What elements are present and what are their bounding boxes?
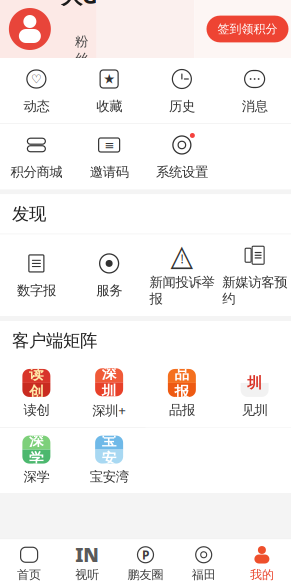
staticText: 深圳+ <box>92 401 126 419</box>
button[interactable]: 品报 <box>145 361 218 426</box>
staticText: 粉丝 0 <box>75 33 88 85</box>
button[interactable]: IN <box>58 545 116 582</box>
button[interactable]: 我的 <box>233 545 291 582</box>
staticText: 深圳 <box>102 364 117 400</box>
staticText: 深学 <box>29 432 44 468</box>
button[interactable]: 历史 <box>145 58 218 123</box>
button[interactable]: 圳 <box>218 361 291 426</box>
button[interactable]: 积分商城 <box>0 124 73 189</box>
staticText: 深学 <box>23 469 49 485</box>
staticText: 收藏 <box>96 98 122 114</box>
staticText: ♡ <box>31 72 42 86</box>
staticText: 宝安 <box>102 432 117 468</box>
button[interactable]: 读创 <box>0 361 73 426</box>
staticText: 见圳 <box>242 402 268 418</box>
staticText: 系统设置 <box>156 164 208 180</box>
button[interactable]: 新媒访客预约 <box>218 234 291 316</box>
button[interactable]: 深学 <box>0 428 73 493</box>
button[interactable]: 福田 <box>175 545 233 582</box>
button[interactable]: ♡ <box>0 58 73 123</box>
button[interactable]: 深圳 <box>73 360 146 427</box>
staticText: 福田 <box>192 567 216 582</box>
button[interactable]: 消息 <box>218 58 291 123</box>
button[interactable]: 系统设置 <box>145 124 218 189</box>
staticText: 积分商城 <box>10 164 62 180</box>
button[interactable]: 首页 <box>0 545 58 582</box>
staticText: ! <box>180 251 183 267</box>
staticText: 视听 <box>75 567 99 582</box>
staticText: 鹏友圈 <box>127 567 163 582</box>
staticText: 签到领积分 <box>217 22 277 36</box>
staticText: ★ <box>103 71 115 86</box>
staticText: 历史 <box>169 98 195 114</box>
staticText: 读创 <box>23 402 49 418</box>
staticText: 新闻投诉举报 <box>149 274 214 307</box>
staticText: 发现 <box>12 203 46 225</box>
staticText: P <box>142 547 149 563</box>
staticText: 服务 <box>96 282 122 299</box>
staticText: 消息 <box>242 98 268 114</box>
staticText: 品报 <box>169 402 195 418</box>
button[interactable]: 服务 <box>73 242 146 308</box>
staticText: 读创 <box>29 365 44 401</box>
button[interactable]: 签到领积分 <box>206 16 288 42</box>
button[interactable]: ★ <box>73 58 146 123</box>
button[interactable]: △ <box>145 234 218 316</box>
staticText: IN <box>75 542 99 567</box>
staticText: 首页 <box>17 567 41 582</box>
staticText: 客户端矩阵 <box>12 330 97 351</box>
staticText: 我的 <box>250 567 274 582</box>
staticText: 大大大G <box>61 0 103 10</box>
staticText: △ <box>170 239 193 272</box>
staticText: 数字报 <box>17 282 56 299</box>
staticText: 动态 <box>23 98 49 114</box>
staticText: 邀请码 <box>90 164 129 180</box>
button[interactable]: P <box>116 545 175 582</box>
button[interactable]: 宝安 <box>73 428 146 493</box>
button[interactable]: 数字报 <box>0 242 73 308</box>
button[interactable]: ≡ <box>73 124 146 189</box>
staticText: 圳 <box>247 374 262 392</box>
staticText: 宝安湾 <box>90 469 129 485</box>
staticText: ≡ <box>104 138 114 152</box>
staticText: 新媒访客预约 <box>222 274 287 307</box>
staticText: 品报 <box>174 365 189 401</box>
